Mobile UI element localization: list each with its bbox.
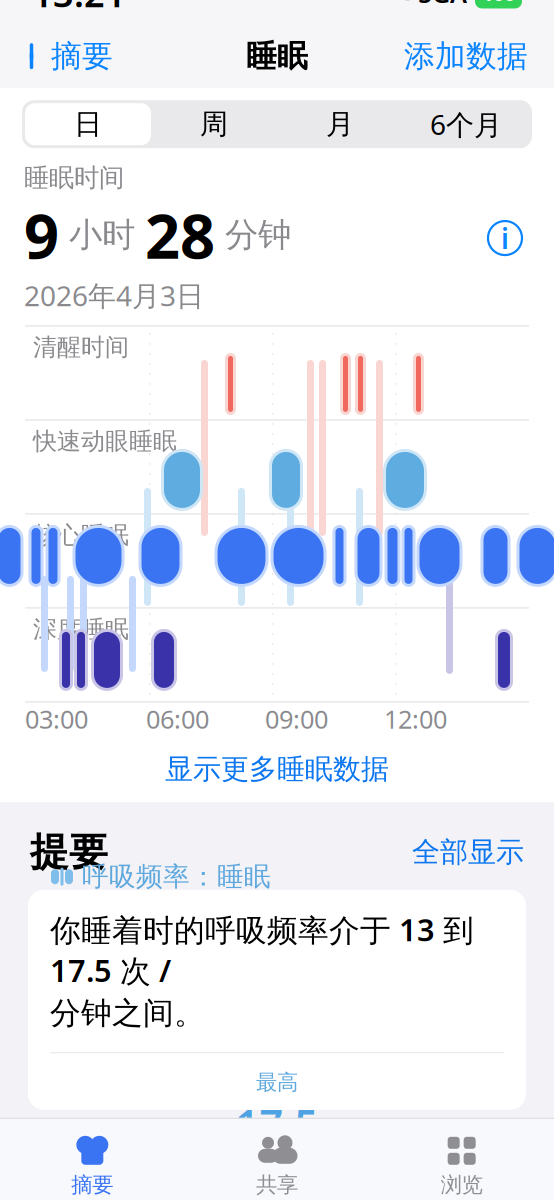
staticText: 最高 <box>256 1069 298 1095</box>
staticText: 分钟之间。 <box>50 994 205 1032</box>
staticText: 09:00 <box>265 702 328 736</box>
staticText: 摘要 <box>51 37 113 75</box>
button[interactable]: 月 <box>277 103 403 145</box>
button[interactable]: 呼吸频率：睡眠 <box>28 890 526 1110</box>
staticText: 日 <box>74 107 102 141</box>
staticText: 分钟 <box>215 215 291 255</box>
staticText: 你睡着时的呼吸频率介于 13 到 17.5 次 / <box>50 909 474 990</box>
staticText: i <box>501 219 509 257</box>
staticText: 5GA <box>418 0 467 10</box>
staticText: 提要 <box>30 828 108 876</box>
staticText: 17.5 <box>235 1096 318 1151</box>
staticText: 13:21 <box>32 0 126 17</box>
staticText: 2026年4月3日 <box>24 277 204 314</box>
staticText: 周 <box>200 107 228 141</box>
staticText: 月 <box>326 107 354 141</box>
staticText: 全部显示 <box>412 835 524 869</box>
button[interactable]: 关于睡眠数据 <box>480 213 530 263</box>
button[interactable]: 6个月 <box>403 103 529 145</box>
button[interactable]: 摘要 <box>22 29 117 83</box>
staticText: 共享 <box>256 1172 298 1198</box>
staticText: 添加数据 <box>404 37 528 75</box>
staticText: 小时 <box>59 215 145 255</box>
button[interactable]: 浏览 <box>369 1127 554 1200</box>
staticText: 摘要 <box>71 1172 113 1198</box>
staticText: 清醒时间 <box>33 332 129 362</box>
button[interactable]: 全部显示 <box>412 829 524 875</box>
staticText: 28 <box>145 194 215 276</box>
staticText: 睡眠时间 <box>24 162 124 193</box>
staticText: 100 <box>482 0 515 6</box>
button[interactable]: 日 <box>25 103 151 145</box>
button[interactable]: 添加数据 <box>400 29 532 83</box>
staticText: 06:00 <box>146 702 209 736</box>
staticText: 12:00 <box>384 702 447 736</box>
button[interactable]: 摘要 <box>0 1127 185 1200</box>
button[interactable]: 显示更多睡眠数据 <box>0 736 554 802</box>
button[interactable]: 周 <box>151 103 277 145</box>
staticText: 睡眠 <box>246 37 308 75</box>
staticText: 03:00 <box>25 702 88 736</box>
staticText: 9 <box>24 194 59 276</box>
staticText: 显示更多睡眠数据 <box>165 752 389 786</box>
staticText: 深度睡眠 <box>33 614 129 644</box>
staticText: 快速动眼睡眠 <box>33 426 177 456</box>
staticText: 呼吸频率：睡眠 <box>82 860 271 893</box>
staticText: 核心睡眠 <box>33 520 129 550</box>
button[interactable]: 共享 <box>185 1127 369 1200</box>
staticText: 6个月 <box>430 106 502 143</box>
staticText: 浏览 <box>441 1172 483 1198</box>
